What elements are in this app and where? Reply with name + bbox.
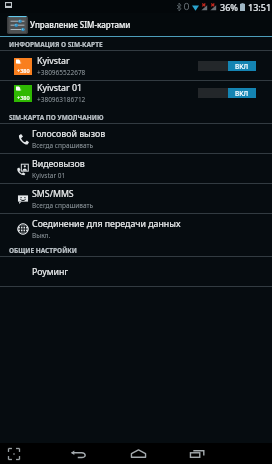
staticText: SMS/MMS [32, 188, 74, 200]
staticText: 36% [220, 1, 238, 13]
button[interactable]: Recent apps [189, 443, 206, 464]
staticText: ВКЛ [235, 62, 249, 71]
staticText: Kyivstar 01 [32, 171, 66, 180]
staticText: Всегда спрашивать [32, 201, 94, 210]
staticText: Выкл. [32, 231, 51, 240]
button[interactable]: Видеовызов [0, 154, 272, 184]
button[interactable]: Home [130, 443, 147, 464]
staticText: +380965522678 [37, 68, 86, 77]
staticText: Соединение для передачи данных [32, 218, 181, 230]
button[interactable]: Роуминг [0, 257, 272, 287]
button[interactable]: Соединение для передачи данных [0, 214, 272, 244]
staticText: +380 [17, 94, 30, 101]
staticText: ВКЛ [235, 89, 249, 98]
staticText: 13:51 [248, 1, 272, 13]
staticText: Kyivstar 01 [37, 82, 82, 94]
button[interactable]: Back [70, 443, 87, 464]
button[interactable]: Fullscreen [6, 446, 21, 461]
staticText: +380963186712 [37, 95, 86, 104]
staticText: Роуминг [32, 266, 69, 278]
button[interactable]: +380 [0, 51, 272, 81]
staticText: Kyivstar [37, 55, 70, 67]
staticText: ОБЩИЕ НАСТРОЙКИ [9, 246, 77, 255]
button[interactable]: Голосовой вызов [0, 124, 272, 154]
staticText: Видеовызов [32, 158, 85, 170]
staticText: SIM-КАРТА ПО УМОЛЧАНИЮ [9, 113, 104, 122]
staticText: +380 [17, 67, 30, 74]
button[interactable]: +380 [0, 81, 272, 105]
staticText: ИНФОРМАЦИЯ О SIM-КАРТЕ [9, 40, 103, 49]
button[interactable]: SMS/MMS [0, 184, 272, 214]
button[interactable]: Toggle SIM [198, 61, 256, 71]
staticText: Голосовой вызов [32, 128, 106, 140]
staticText: Всегда спрашивать [32, 141, 94, 150]
button[interactable]: Toggle SIM [198, 88, 256, 98]
staticText: Управление SIM-картами [30, 19, 131, 30]
button[interactable]: Up [7, 13, 28, 36]
